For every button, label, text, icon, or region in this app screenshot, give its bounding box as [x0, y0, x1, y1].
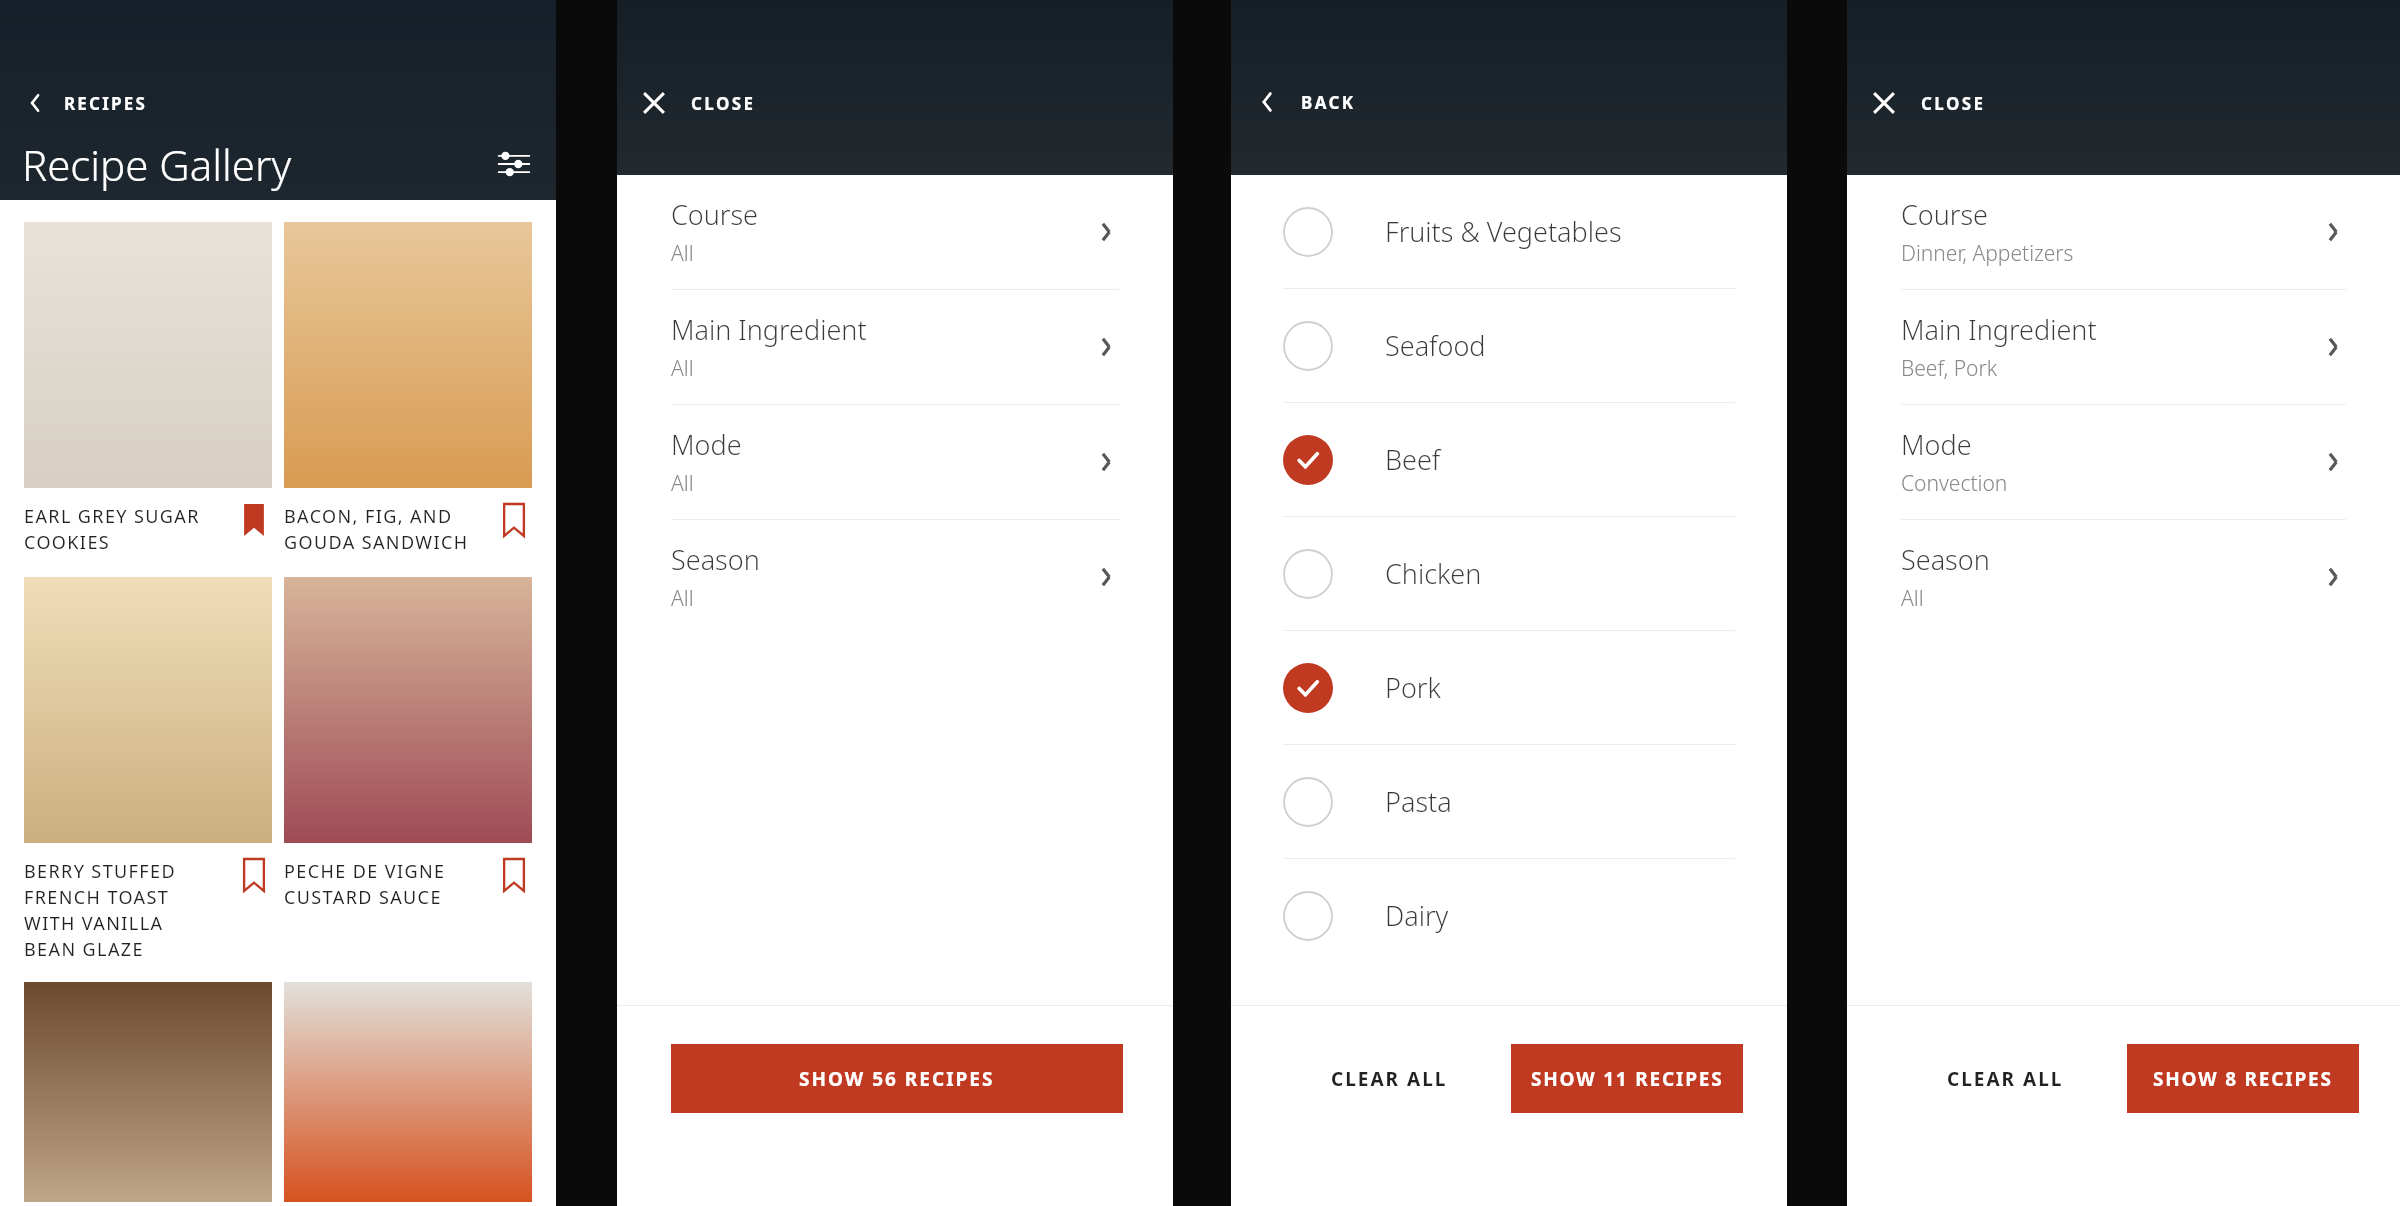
staticText: EARL GREY SUGAR COOKIES	[24, 504, 228, 555]
button[interactable]: Bookmark	[496, 504, 532, 540]
button[interactable]: Course	[1901, 175, 2346, 289]
button[interactable]: Dairy	[1283, 859, 1735, 972]
button[interactable]: Close	[639, 88, 756, 118]
button[interactable]: CLEAR ALL	[1893, 1044, 2117, 1113]
staticText: SHOW 56 RECIPES	[799, 1066, 995, 1092]
button[interactable]: Main Ingredient	[1901, 290, 2346, 404]
staticText: CLEAR ALL	[1331, 1066, 1448, 1092]
button[interactable]: Pasta	[1283, 745, 1735, 858]
button[interactable]	[284, 982, 532, 1202]
button[interactable]: PECHE DE VIGNE CUSTARD SAUCE	[284, 577, 532, 910]
staticText: All	[671, 469, 694, 498]
button[interactable]: RECIPES	[22, 90, 148, 116]
staticText: Season	[671, 541, 760, 578]
staticText: Beef	[1385, 441, 1441, 478]
staticText: Recipe Gallery	[22, 136, 292, 193]
button[interactable]: Close	[1869, 88, 1986, 118]
button[interactable]: EARL GREY SUGAR COOKIES	[24, 222, 272, 555]
staticText: All	[671, 354, 694, 383]
staticText: All	[671, 584, 694, 613]
staticText: Pasta	[1385, 783, 1452, 820]
staticText: Seafood	[1385, 327, 1486, 364]
staticText: Main Ingredient	[671, 311, 867, 348]
button[interactable]: BACON, FIG, AND GOUDA SANDWICH	[284, 222, 532, 555]
button[interactable]: Mode	[671, 405, 1119, 519]
staticText: Chicken	[1385, 555, 1482, 592]
button[interactable]: Season	[1901, 520, 2346, 634]
button[interactable]: Bookmark	[236, 859, 272, 895]
staticText: BERRY STUFFED FRENCH TOAST WITH VANILLA …	[24, 859, 228, 962]
button[interactable]: Bookmark	[496, 859, 532, 895]
button[interactable]	[24, 982, 272, 1202]
button[interactable]: Season	[671, 520, 1119, 634]
button[interactable]: Filter	[490, 140, 538, 188]
staticText: BACON, FIG, AND GOUDA SANDWICH	[284, 504, 488, 555]
staticText: All	[671, 239, 694, 268]
staticText: Beef, Pork	[1901, 354, 1998, 383]
button[interactable]: SHOW 8 RECIPES	[2127, 1044, 2359, 1113]
staticText: PECHE DE VIGNE CUSTARD SAUCE	[284, 859, 488, 910]
button[interactable]: SHOW 11 RECIPES	[1511, 1044, 1743, 1113]
button[interactable]: BERRY STUFFED FRENCH TOAST WITH VANILLA …	[24, 577, 272, 962]
button[interactable]: Seafood	[1283, 289, 1735, 402]
staticText: Season	[1901, 541, 1990, 578]
staticText: Dinner, Appetizers	[1901, 239, 2074, 268]
staticText: Mode	[1901, 426, 1972, 463]
staticText: Pork	[1385, 669, 1441, 706]
staticText: SHOW 11 RECIPES	[1531, 1066, 1724, 1092]
staticText: CLOSE	[1921, 92, 1986, 115]
staticText: BACK	[1301, 91, 1356, 114]
staticText: Convection	[1901, 469, 2008, 498]
staticText: Fruits & Vegetables	[1385, 213, 1622, 250]
button[interactable]: Mode	[1901, 405, 2346, 519]
staticText: SHOW 8 RECIPES	[2153, 1066, 2333, 1092]
staticText: CLOSE	[691, 92, 756, 115]
staticText: CLEAR ALL	[1947, 1066, 2064, 1092]
button[interactable]: Back	[1253, 88, 1356, 116]
staticText: All	[1901, 584, 1924, 613]
staticText: Main Ingredient	[1901, 311, 2097, 348]
button[interactable]: CLEAR ALL	[1277, 1044, 1501, 1113]
button[interactable]: Main Ingredient	[671, 290, 1119, 404]
staticText: Course	[1901, 196, 1988, 233]
staticText: Dairy	[1385, 897, 1449, 934]
staticText: Mode	[671, 426, 742, 463]
button[interactable]: Bookmark	[236, 504, 272, 540]
staticText: Course	[671, 196, 758, 233]
button[interactable]: Course	[671, 175, 1119, 289]
button[interactable]: Fruits & Vegetables	[1283, 175, 1735, 288]
staticText: RECIPES	[64, 92, 148, 115]
button[interactable]: Pork	[1283, 631, 1735, 744]
button[interactable]: Beef	[1283, 403, 1735, 516]
button[interactable]: SHOW 56 RECIPES	[671, 1044, 1123, 1113]
button[interactable]: Chicken	[1283, 517, 1735, 630]
